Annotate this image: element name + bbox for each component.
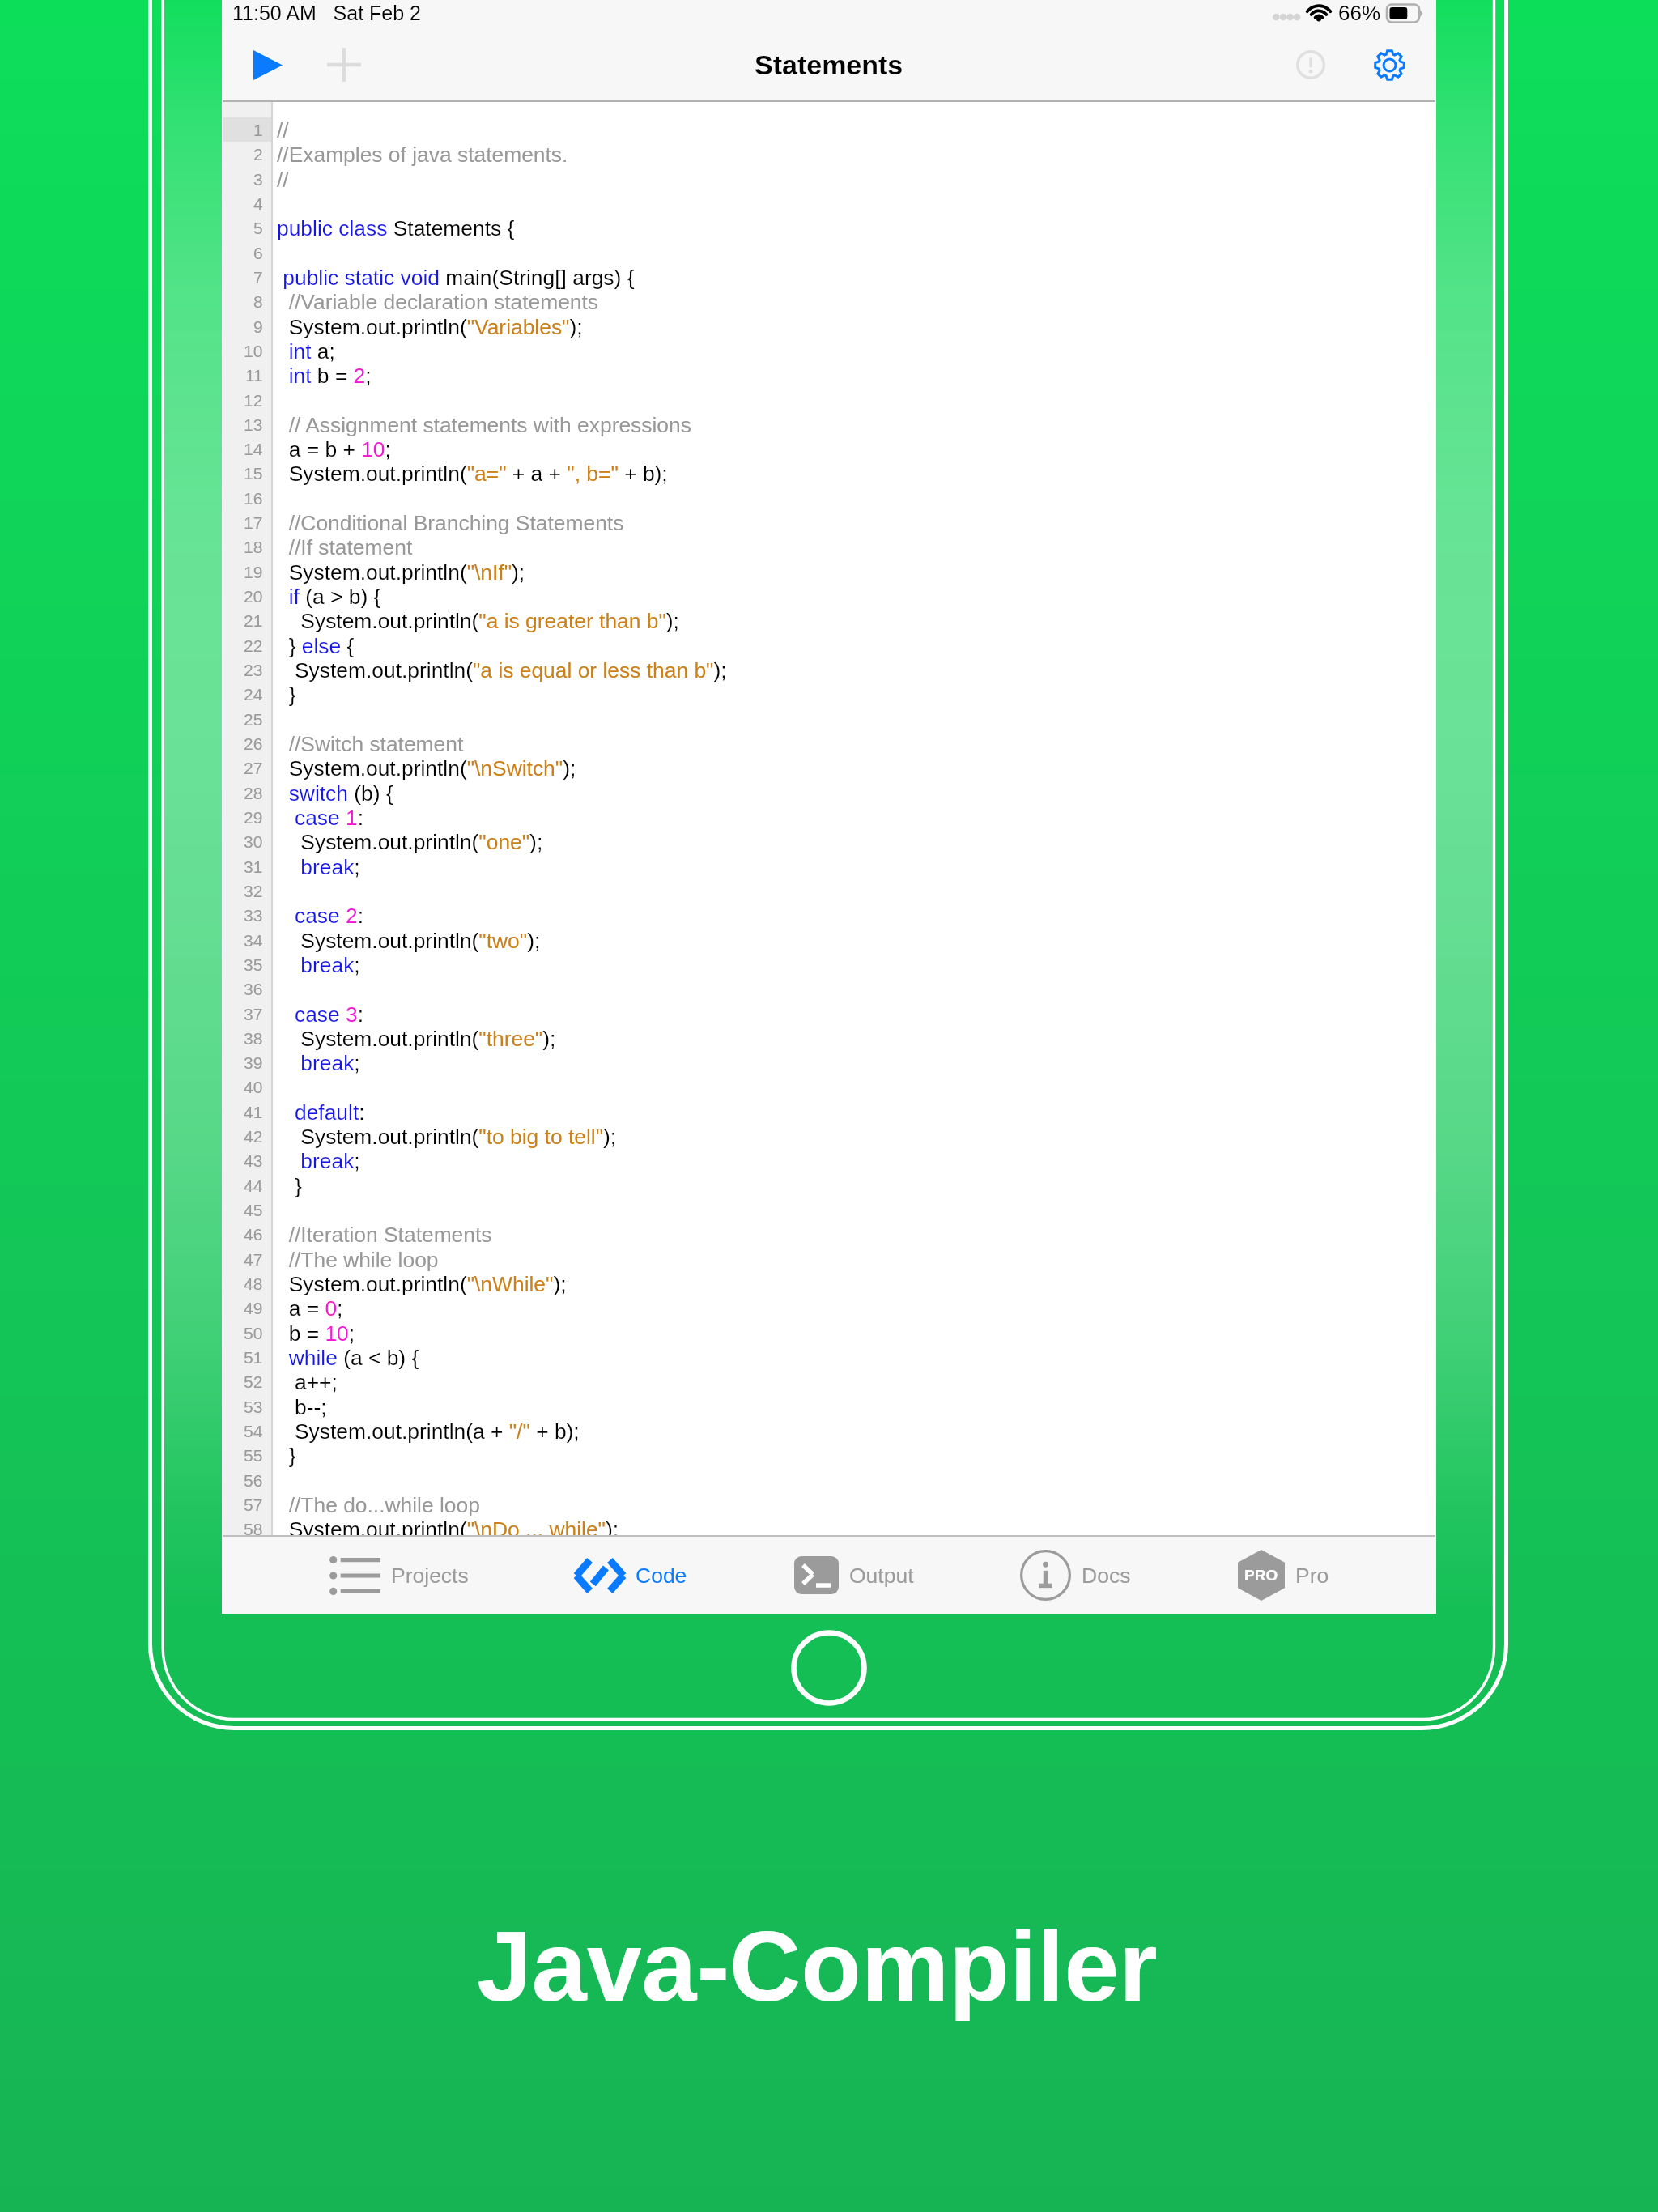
staticText: Statements xyxy=(755,49,903,80)
staticText: //Variable declaration statements xyxy=(277,290,599,313)
staticText: 20 xyxy=(244,587,263,606)
staticText: 22 xyxy=(244,636,263,655)
staticText: System.out.println("\nSwitch"); xyxy=(277,756,576,780)
staticText: 13 xyxy=(244,415,263,434)
staticText: 54 xyxy=(244,1422,263,1440)
staticText: break; xyxy=(277,953,360,976)
staticText: a = 0; xyxy=(277,1296,343,1320)
button[interactable]: Warnings xyxy=(1282,36,1339,93)
staticText: b = 10; xyxy=(277,1321,355,1345)
staticText: 43 xyxy=(244,1151,263,1170)
staticText: a = b + 10; xyxy=(277,437,391,461)
staticText: } xyxy=(277,683,296,706)
staticText: //Conditional Branching Statements xyxy=(277,511,624,534)
staticText: b--; xyxy=(277,1395,327,1419)
staticText: 33 xyxy=(244,906,263,925)
staticText: 53 xyxy=(244,1397,263,1416)
staticText: break; xyxy=(277,1051,360,1074)
button[interactable]: PRO xyxy=(1238,1537,1329,1614)
staticText: public static void main(String[] args) { xyxy=(277,266,635,289)
staticText: //Iteration Statements xyxy=(277,1223,492,1246)
button[interactable]: Run xyxy=(237,34,299,96)
staticText: default: xyxy=(277,1100,365,1124)
staticText: 56 xyxy=(244,1471,263,1490)
staticText: System.out.println("to big to tell"); xyxy=(277,1125,617,1148)
staticText: 23 xyxy=(244,661,263,679)
staticText: } xyxy=(277,1444,296,1467)
staticText: System.out.println("two"); xyxy=(277,929,541,952)
staticText: 26 xyxy=(244,734,263,753)
staticText: Java-Compiler xyxy=(477,1912,1158,2022)
staticText: 44 xyxy=(244,1176,263,1195)
button[interactable]: Output xyxy=(794,1537,914,1614)
staticText: 10 xyxy=(244,342,263,360)
staticText: System.out.println("a is equal or less t… xyxy=(277,658,727,682)
staticText: 29 xyxy=(244,808,263,827)
staticText: //Switch statement xyxy=(277,732,464,755)
staticText: int a; xyxy=(277,339,335,363)
staticText: 36 xyxy=(244,980,263,998)
staticText: break; xyxy=(277,1149,360,1172)
staticText: 39 xyxy=(244,1053,263,1072)
staticText: 32 xyxy=(244,882,263,900)
staticText: 42 xyxy=(244,1127,263,1146)
staticText: 38 xyxy=(244,1029,263,1048)
staticText: //The do...while loop xyxy=(277,1493,480,1516)
staticText: 12 xyxy=(244,391,263,410)
staticText: //If statement xyxy=(277,535,413,559)
staticText: System.out.println(a + "/" + b); xyxy=(277,1419,580,1443)
staticText: 48 xyxy=(244,1274,263,1293)
staticText: int b = 2; xyxy=(277,364,372,387)
staticText: } xyxy=(277,1174,302,1197)
staticText: 35 xyxy=(244,955,263,974)
staticText: 28 xyxy=(244,784,263,802)
staticText: System.out.println("three"); xyxy=(277,1027,556,1050)
staticText: 41 xyxy=(244,1103,263,1121)
staticText: 47 xyxy=(244,1250,263,1269)
button[interactable]: Docs xyxy=(1020,1537,1131,1614)
staticText: System.out.println("\nWhile"); xyxy=(277,1272,567,1295)
staticText: 37 xyxy=(244,1005,263,1023)
staticText: 6 xyxy=(253,244,263,262)
staticText: case 2: xyxy=(277,904,364,927)
button[interactable]: Settings xyxy=(1361,36,1418,93)
staticText: System.out.println("Variables"); xyxy=(277,315,583,338)
staticText: 11:50 AM Sat Feb 2 xyxy=(232,2,422,24)
staticText: System.out.println("one"); xyxy=(277,830,543,853)
staticText: System.out.println("a=" + a + ", b=" + b… xyxy=(277,462,668,485)
staticText: System.out.println("\nDo ... while"); xyxy=(277,1517,619,1541)
staticText: 4 xyxy=(253,194,263,213)
staticText: 8 xyxy=(253,292,263,311)
staticText: 24 xyxy=(244,685,263,704)
staticText: 30 xyxy=(244,832,263,851)
staticText: 3 xyxy=(253,170,263,189)
staticText: Pro xyxy=(1295,1563,1329,1588)
button[interactable]: Add xyxy=(313,34,375,96)
staticText: 27 xyxy=(244,759,263,777)
staticText: public class Statements { xyxy=(277,216,515,240)
staticText: 34 xyxy=(244,931,263,950)
staticText: 50 xyxy=(244,1324,263,1342)
staticText: if (a > b) { xyxy=(277,585,381,608)
staticText: PRO xyxy=(1244,1567,1278,1584)
staticText: // Assignment statements with expression… xyxy=(277,413,691,436)
staticText: 46 xyxy=(244,1225,263,1244)
staticText: 31 xyxy=(244,857,263,876)
staticText: Projects xyxy=(391,1563,469,1588)
staticText: System.out.println("\nIf"); xyxy=(277,560,525,584)
staticText: 66% xyxy=(1338,1,1381,24)
staticText: 5 xyxy=(253,219,263,237)
staticText: while (a < b) { xyxy=(277,1346,419,1369)
staticText: Output xyxy=(849,1563,914,1588)
button[interactable]: Code xyxy=(575,1537,687,1614)
staticText: //Examples of java statements. xyxy=(277,143,568,166)
staticText: 14 xyxy=(244,440,263,458)
staticText: 45 xyxy=(244,1201,263,1219)
staticText: //The while loop xyxy=(277,1248,439,1271)
staticText: 51 xyxy=(244,1348,263,1367)
staticText: 52 xyxy=(244,1372,263,1391)
staticText: 17 xyxy=(244,513,263,532)
staticText: 55 xyxy=(244,1446,263,1465)
staticText: 1 xyxy=(253,121,263,139)
button[interactable]: Projects xyxy=(329,1537,469,1614)
